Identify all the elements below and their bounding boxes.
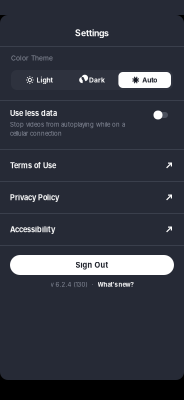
staticText: Dark xyxy=(89,76,105,84)
button[interactable]: What's new? xyxy=(97,281,133,288)
button[interactable]: Light xyxy=(13,72,66,88)
button[interactable]: Privacy Policy xyxy=(0,182,184,213)
staticText: Accessibility xyxy=(10,225,55,234)
staticText: v 6.2.4 (130) · xyxy=(50,281,97,288)
staticText: Sign Out xyxy=(75,261,108,269)
staticText: What's new? xyxy=(97,281,133,288)
staticText: Light xyxy=(37,76,53,84)
button[interactable]: Sign Out xyxy=(10,255,174,275)
staticText: Terms of Use xyxy=(10,161,56,170)
staticText: Auto xyxy=(142,76,157,84)
button[interactable]: Accessibility xyxy=(0,214,184,245)
button[interactable]: Use less data xyxy=(154,109,168,121)
staticText: Privacy Policy xyxy=(10,193,59,202)
staticText: Color Theme xyxy=(11,54,53,62)
staticText: Stop videos from autoplaying while on a xyxy=(10,121,125,128)
button[interactable]: Auto xyxy=(118,72,171,88)
staticText: cellular connection xyxy=(10,130,62,137)
staticText: Use less data xyxy=(10,109,57,118)
button[interactable]: Dark xyxy=(66,72,118,88)
button[interactable]: Terms of Use xyxy=(0,150,184,181)
staticText: Settings xyxy=(75,28,109,38)
